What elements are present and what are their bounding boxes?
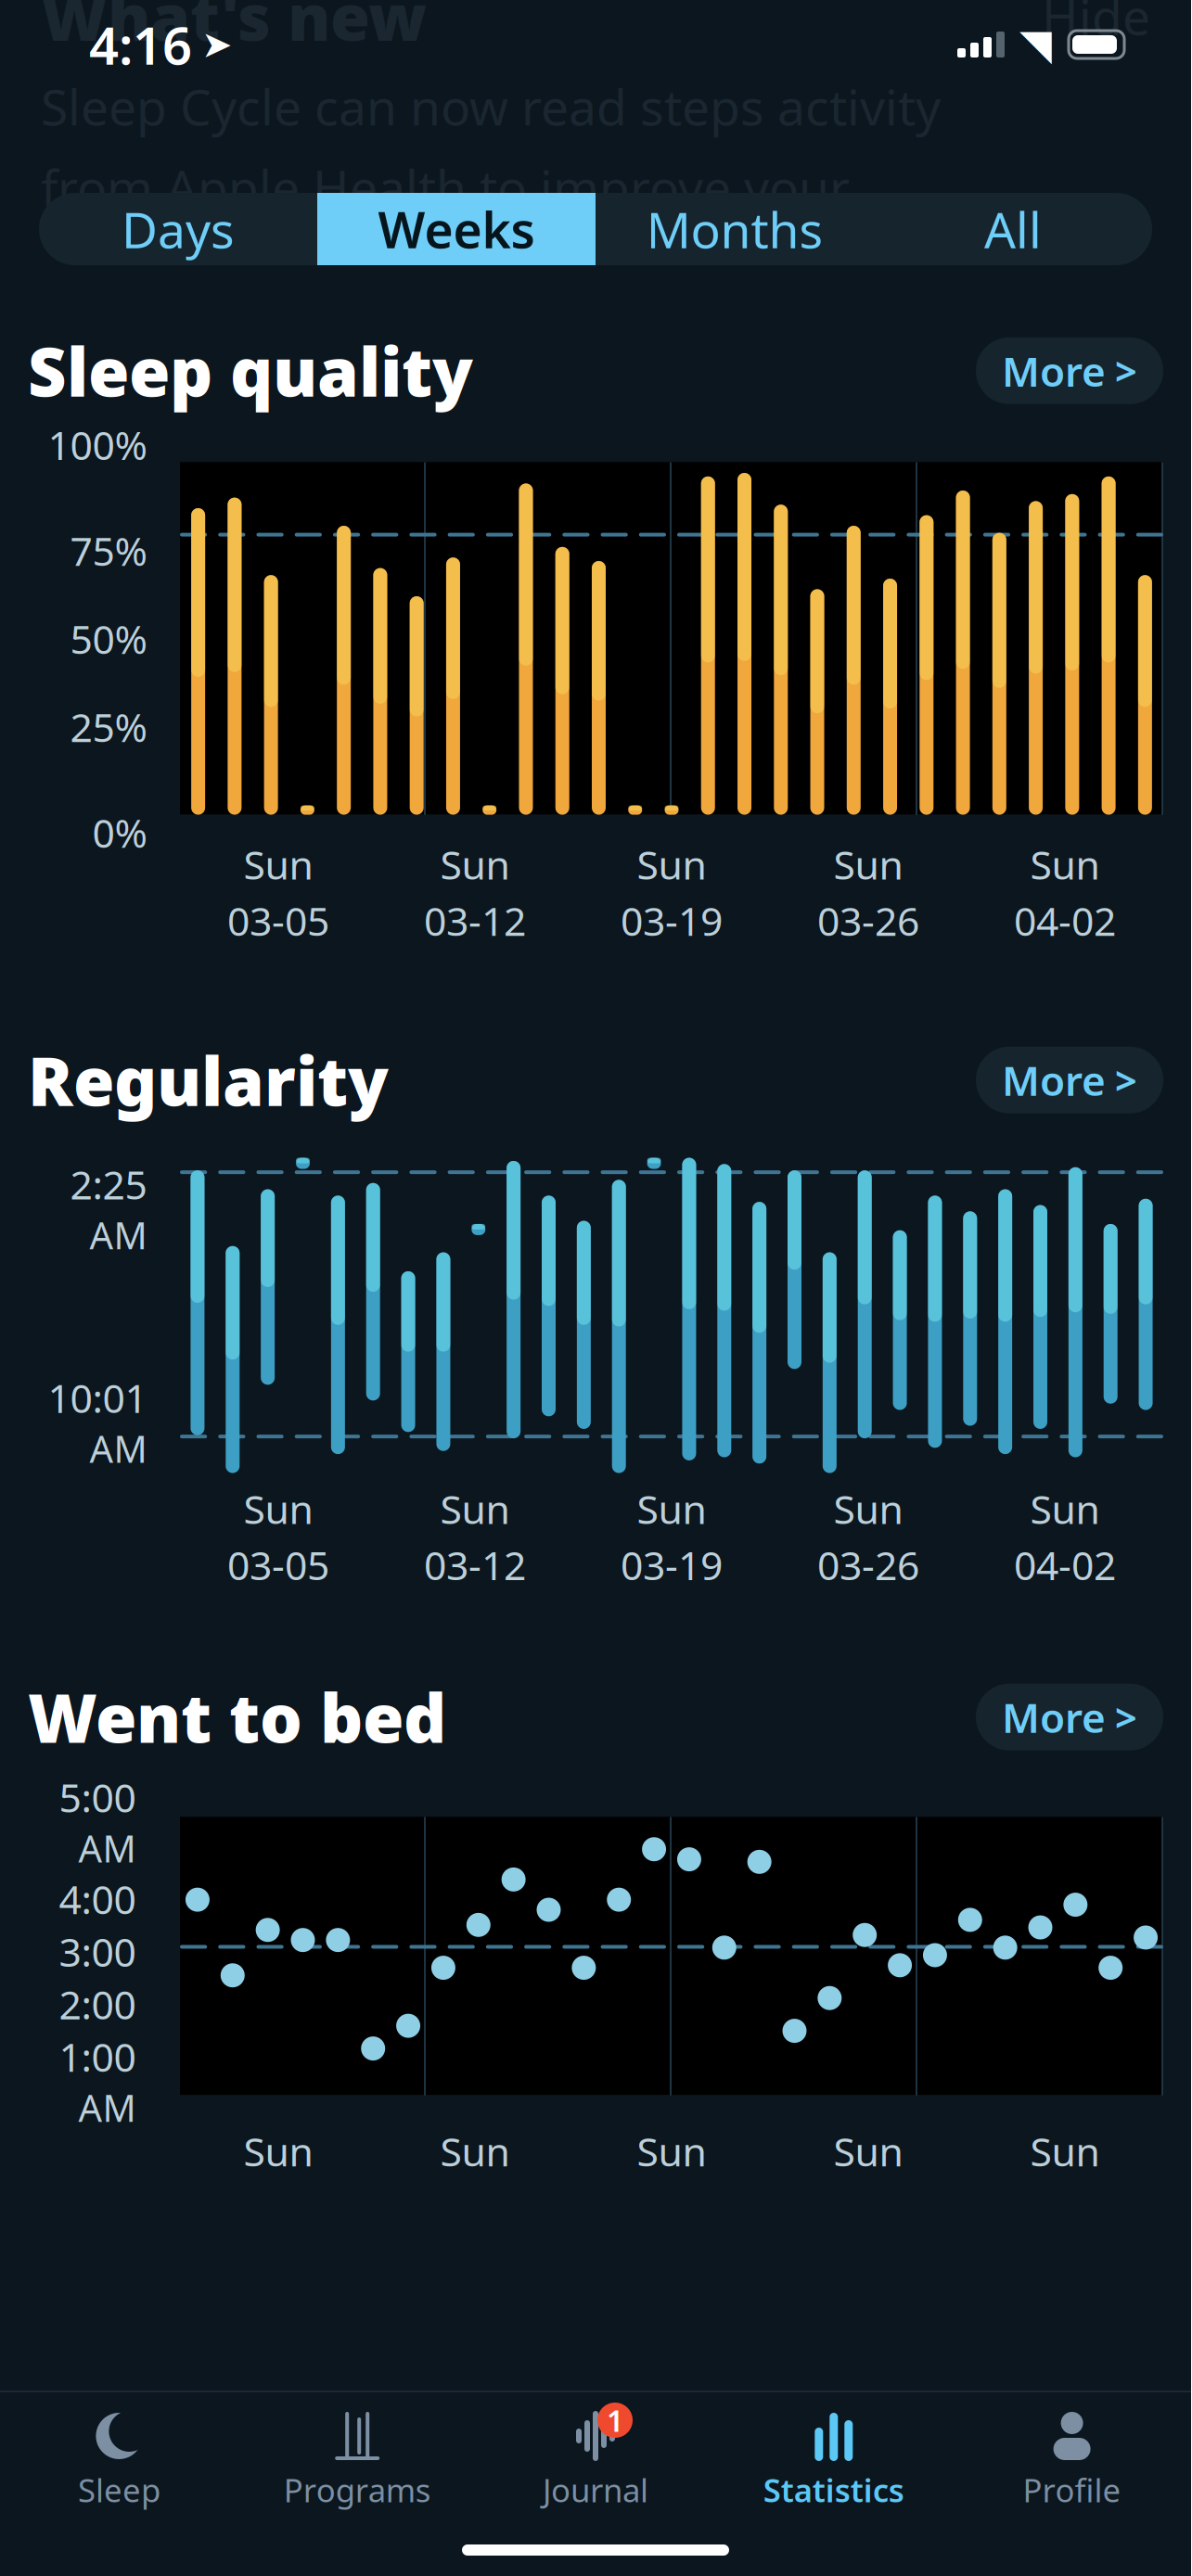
- staticText: 50%: [70, 612, 147, 665]
- staticText: 03-26: [817, 894, 919, 947]
- staticText: 4:16: [89, 10, 192, 79]
- staticText: Sleep quality: [28, 326, 473, 415]
- staticText: from Apple Health to improve your...: [41, 154, 880, 220]
- staticText: 03-19: [621, 1539, 723, 1591]
- staticText: AM: [90, 1424, 147, 1473]
- staticText: 3:00: [59, 1925, 136, 1978]
- staticText: 04-02: [1014, 894, 1116, 947]
- staticText: Sun: [637, 838, 706, 890]
- button[interactable]: All: [874, 193, 1152, 265]
- staticText: Sun: [833, 838, 903, 890]
- staticText: 03-12: [424, 894, 526, 947]
- button[interactable]: Statistics: [715, 2398, 953, 2524]
- staticText: Sun: [833, 1482, 903, 1535]
- staticText: Went to bed: [28, 1673, 446, 1761]
- staticText: Sleep: [78, 2468, 160, 2511]
- button[interactable]: Months: [596, 193, 874, 265]
- staticText: 0%: [92, 806, 147, 859]
- staticText: More: [1002, 1690, 1106, 1744]
- staticText: More: [1002, 344, 1106, 398]
- staticText: Statistics: [763, 2468, 904, 2511]
- staticText: 2:25: [70, 1158, 147, 1210]
- staticText: Sleep Cycle can now read steps activity: [41, 73, 941, 139]
- staticText: Hide: [1042, 0, 1150, 49]
- staticText: Days: [122, 196, 235, 262]
- button[interactable]: Days: [39, 193, 317, 265]
- staticText: >: [1115, 1055, 1137, 1106]
- button[interactable]: Weeks: [317, 193, 596, 265]
- button[interactable]: Sleep: [0, 2398, 238, 2524]
- staticText: Sun: [440, 2125, 510, 2177]
- button[interactable]: Programs: [238, 2398, 476, 2524]
- button[interactable]: More: [976, 1684, 1163, 1750]
- staticText: 25%: [70, 700, 147, 753]
- staticText: 1:00: [59, 2030, 136, 2083]
- staticText: Regularity: [28, 1036, 389, 1124]
- staticText: Profile: [1023, 2468, 1121, 2511]
- staticText: AM: [90, 1210, 147, 1260]
- staticText: >: [1115, 345, 1137, 396]
- staticText: >: [1115, 1692, 1137, 1742]
- staticText: AM: [78, 1823, 136, 1873]
- staticText: 03-05: [227, 894, 329, 947]
- staticText: Sun: [244, 838, 313, 890]
- staticText: What's new: [41, 0, 427, 59]
- staticText: Sun: [833, 2125, 903, 2177]
- staticText: 04-02: [1014, 1539, 1116, 1591]
- staticText: Journal: [543, 2468, 648, 2511]
- staticText: Sun: [440, 1482, 510, 1535]
- staticText: AM: [78, 2083, 136, 2132]
- staticText: Sun: [637, 1482, 706, 1535]
- staticText: 03-19: [621, 894, 723, 947]
- staticText: 03-26: [817, 1539, 919, 1591]
- staticText: 100%: [48, 418, 147, 471]
- staticText: 1: [607, 2400, 623, 2440]
- button[interactable]: 1: [476, 2398, 715, 2524]
- button[interactable]: More: [976, 1047, 1163, 1113]
- staticText: ➤: [201, 23, 233, 66]
- staticText: Months: [646, 196, 823, 262]
- staticText: 03-05: [227, 1539, 329, 1591]
- staticText: Sun: [1030, 2125, 1100, 2177]
- staticText: 10:01: [48, 1371, 147, 1424]
- button[interactable]: More: [976, 337, 1163, 404]
- staticText: Sun: [244, 2125, 313, 2177]
- staticText: All: [984, 196, 1042, 262]
- staticText: More: [1002, 1053, 1106, 1107]
- staticText: Sun: [244, 1482, 313, 1535]
- staticText: 03-12: [424, 1539, 526, 1591]
- button[interactable]: Profile: [953, 2398, 1191, 2524]
- staticText: Programs: [284, 2468, 431, 2511]
- staticText: ◥: [1019, 21, 1052, 68]
- staticText: Weeks: [378, 196, 535, 262]
- staticText: 5:00: [59, 1771, 136, 1823]
- staticText: 4:00: [59, 1873, 136, 1925]
- staticText: Sun: [1030, 838, 1100, 890]
- staticText: Sun: [1030, 1482, 1100, 1535]
- staticText: Sun: [440, 838, 510, 890]
- staticText: 75%: [70, 524, 147, 577]
- staticText: 2:00: [59, 1978, 136, 2030]
- staticText: Sun: [637, 2125, 706, 2177]
